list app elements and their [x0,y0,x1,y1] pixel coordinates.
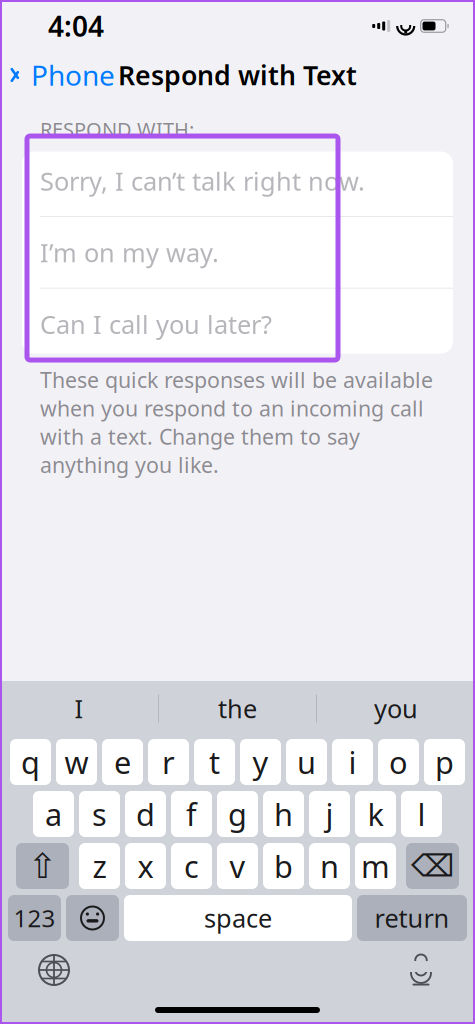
button[interactable]: you [317,686,475,730]
staticText: 4:04 [48,7,104,45]
button[interactable]: the [159,686,316,730]
staticText: k [367,794,383,834]
button[interactable]: x [125,843,166,889]
staticText: p [435,742,454,782]
staticText: Respond with Text [118,57,357,93]
staticText: r [162,742,175,782]
staticText: x [137,846,153,886]
staticText: return [374,901,449,935]
button[interactable]: Shift [16,843,69,889]
button[interactable]: f [171,791,212,837]
button[interactable]: w [56,739,97,785]
staticText: I’m on my way. [40,235,219,269]
staticText: the [218,692,257,725]
staticText: s [92,794,107,834]
button[interactable]: return [357,895,467,941]
staticText: v [229,846,245,886]
staticText: space [204,901,272,935]
staticText: c [184,846,199,886]
staticText: n [320,846,339,886]
staticText: j [325,794,333,834]
button[interactable]: Switch keyboard [0,948,70,992]
button[interactable]: e [102,739,143,785]
staticText: q [21,742,40,782]
staticText: g [228,794,247,834]
staticText: h [274,794,293,834]
button[interactable]: u [286,739,327,785]
button[interactable]: Sorry, I can’t talk right now. [22,152,453,223]
button[interactable]: b [263,843,304,889]
button[interactable]: a [33,791,74,837]
button[interactable]: Emoji [66,895,119,941]
button[interactable]: i [332,739,373,785]
button[interactable]: m [355,843,396,889]
button[interactable]: n [309,843,350,889]
button[interactable]: r [148,739,189,785]
button[interactable]: Delete [406,843,459,889]
button[interactable]: t [194,739,235,785]
button[interactable]: s [79,791,120,837]
staticText: 123 [13,902,55,934]
staticText: Can I call you later? [40,307,272,341]
button[interactable]: 123 [8,895,61,941]
button[interactable]: q [10,739,51,785]
staticText: ⇧ [28,846,57,886]
staticText: t [209,742,220,782]
staticText: e [114,742,131,782]
button[interactable]: h [263,791,304,837]
staticText: I [74,692,83,725]
button[interactable]: v [217,843,258,889]
button[interactable]: g [217,791,258,837]
staticText: you [374,692,418,725]
staticText: z [92,846,106,886]
staticText: l [417,794,425,834]
button[interactable]: z [79,843,120,889]
staticText: RESPOND WITH: [40,116,194,143]
button[interactable]: o [378,739,419,785]
button[interactable]: p [424,739,465,785]
button[interactable]: c [171,843,212,889]
staticText: i [348,742,356,782]
staticText: These quick responses will be available … [40,366,433,479]
button[interactable]: k [355,791,396,837]
button[interactable]: l [401,791,442,837]
staticText: f [186,794,197,834]
staticText: ⌫ [411,849,454,883]
staticText: w [64,742,88,782]
button[interactable]: d [125,791,166,837]
staticText: u [297,742,316,782]
button[interactable]: j [309,791,350,837]
button[interactable]: Phone [0,50,115,100]
button[interactable]: space [124,895,352,941]
button[interactable]: I’m on my way. [22,223,453,295]
staticText: d [136,794,155,834]
staticText: o [389,742,408,782]
staticText: b [274,846,293,886]
staticText: m [361,846,390,886]
staticText: a [45,794,62,834]
staticText: Phone [31,56,115,94]
button[interactable]: Dictate [405,947,475,992]
button[interactable]: Can I call you later? [22,295,453,354]
button[interactable]: I [0,686,158,730]
staticText: Sorry, I can’t talk right now. [40,164,365,198]
button[interactable]: y [240,739,281,785]
staticText: y [252,742,268,782]
